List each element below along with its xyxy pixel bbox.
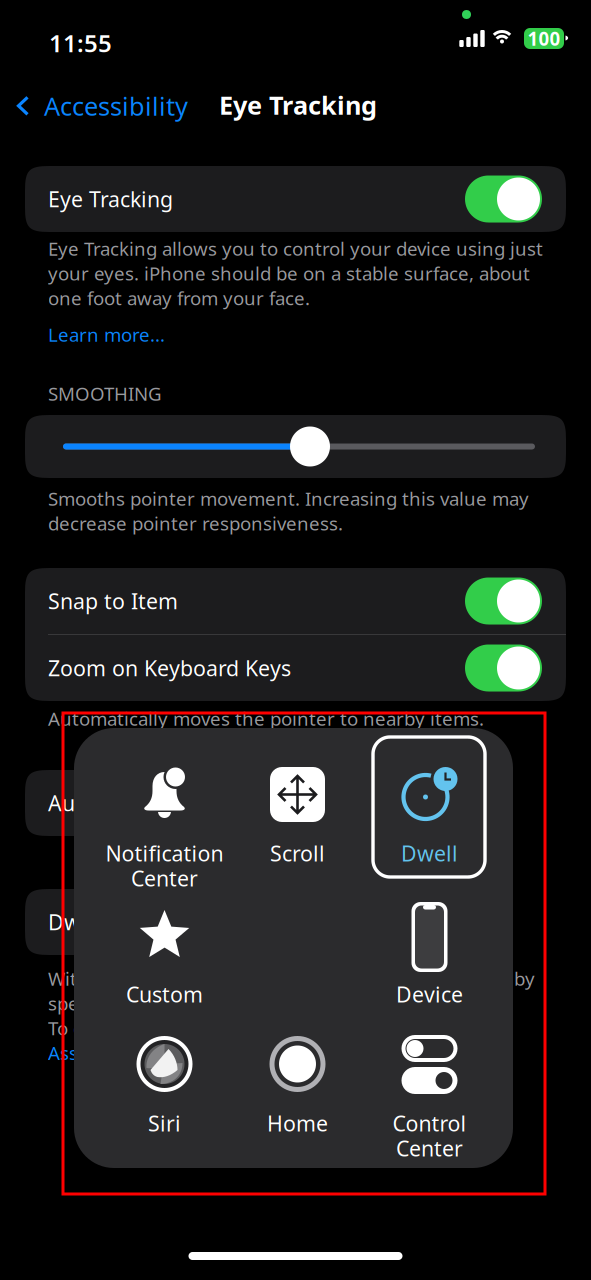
- staticText: Learn more...: [48, 322, 165, 347]
- staticText: Snap to Item: [48, 587, 178, 615]
- staticText: Zoom on Keyboard Keys: [48, 654, 291, 682]
- staticText: To configure, go to: [48, 1016, 212, 1040]
- staticText: With Dwell Control enabled you can perfo…: [48, 966, 535, 991]
- staticText: Accessibility: [44, 89, 188, 123]
- button[interactable]: Learn more...: [48, 322, 165, 347]
- button[interactable]: Scroll: [236, 735, 359, 887]
- staticText: 100: [527, 26, 560, 51]
- button[interactable]: Custom: [103, 888, 226, 1040]
- staticText: Assistive Touch.: [48, 1040, 187, 1065]
- button[interactable]: Dwell: [368, 735, 491, 887]
- button[interactable]: Home: [236, 1010, 359, 1162]
- staticText: Custom: [126, 980, 203, 1008]
- staticText: Center: [131, 864, 198, 892]
- staticText: Device: [396, 980, 463, 1008]
- button[interactable]: Device: [368, 888, 491, 1040]
- button[interactable]: Accessibility: [0, 79, 196, 133]
- staticText: Home: [267, 1109, 328, 1137]
- staticText: Automatically moves the pointer to nearb…: [48, 706, 484, 731]
- button[interactable]: Notification: [103, 735, 226, 887]
- button[interactable]: Control: [368, 1010, 491, 1162]
- button[interactable]: Snap to Item: [25, 568, 566, 634]
- staticText: 11:55: [49, 27, 112, 59]
- button[interactable]: Siri: [103, 1010, 226, 1162]
- staticText: Auto-Hide: [48, 789, 150, 817]
- staticText: SMOOTHING: [48, 381, 162, 406]
- staticText: Eye Tracking: [219, 88, 377, 122]
- staticText: Eye Tracking allows you to control your …: [48, 236, 543, 261]
- staticText: decrease pointer responsiveness.: [48, 511, 343, 536]
- staticText: Smooths pointer movement. Increasing thi…: [48, 486, 529, 511]
- staticText: your eyes. iPhone should be on a stable …: [48, 261, 530, 286]
- staticText: one foot away from your face.: [48, 286, 310, 310]
- staticText: Dwell Control: [48, 908, 185, 936]
- button[interactable]: Eye Tracking: [25, 166, 566, 232]
- button[interactable]: Zoom on Keyboard Keys: [25, 635, 566, 701]
- staticText: Dwell: [401, 839, 458, 867]
- staticText: speeding up, slowing down or stopping on…: [48, 991, 500, 1016]
- staticText: Notification: [105, 839, 223, 867]
- staticText: Eye Tracking: [48, 185, 173, 213]
- staticText: Siri: [148, 1109, 181, 1137]
- staticText: Scroll: [270, 839, 325, 867]
- staticText: Control: [392, 1109, 466, 1137]
- staticText: Center: [396, 1134, 463, 1162]
